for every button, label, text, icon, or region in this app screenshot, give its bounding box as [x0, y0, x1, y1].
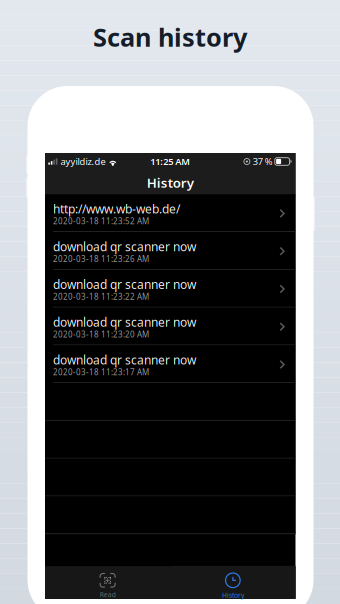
staticText: 2020-03-18 11:23:17 AM — [53, 367, 149, 377]
staticText: 2020-03-18 11:23:20 AM — [53, 329, 149, 340]
staticText: History — [147, 174, 194, 191]
staticText: download qr scanner now — [53, 276, 196, 292]
staticText: download qr scanner now — [53, 314, 196, 330]
staticText: Scan history — [93, 20, 247, 54]
button[interactable]: History — [170, 566, 295, 599]
button[interactable]: Read — [45, 566, 170, 599]
button[interactable]: http://www.wb-web.de/ — [45, 194, 295, 232]
staticText: download qr scanner now — [53, 239, 196, 255]
staticText: http://www.wb-web.de/ — [53, 201, 180, 217]
staticText: download qr scanner now — [53, 352, 196, 368]
staticText: ayyildiz.de — [61, 155, 106, 168]
button[interactable]: download qr scanner now — [45, 345, 295, 383]
staticText: 2020-03-18 11:23:26 AM — [53, 253, 149, 264]
staticText: 2020-03-18 11:23:22 AM — [53, 291, 149, 302]
button[interactable]: download qr scanner now — [45, 308, 295, 345]
button[interactable]: download qr scanner now — [45, 232, 295, 270]
staticText: Read — [100, 590, 116, 599]
staticText: 37 % — [253, 155, 273, 168]
button[interactable]: download qr scanner now — [45, 270, 295, 308]
staticText: 11:25 AM — [150, 155, 190, 168]
staticText: History — [222, 591, 244, 600]
staticText: 2020-03-18 11:23:52 AM — [53, 216, 149, 226]
